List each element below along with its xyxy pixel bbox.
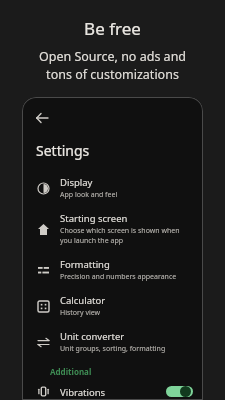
staticText: Vibrations xyxy=(60,386,106,397)
button[interactable]: Back xyxy=(29,105,55,131)
button[interactable]: Calculator xyxy=(22,291,203,321)
staticText: Choose which screen is shown when you la… xyxy=(60,226,191,246)
staticText: Starting screen xyxy=(60,212,128,225)
staticText: Additional xyxy=(50,366,92,377)
staticText: Unit groups, sorting, formatting xyxy=(60,344,166,354)
button[interactable]: Starting screen xyxy=(22,209,203,249)
staticText: Settings xyxy=(36,141,90,160)
staticText: Formatting xyxy=(60,258,110,271)
staticText: Open Source, no ads and tons of customiz… xyxy=(8,48,217,83)
button[interactable]: Display xyxy=(22,173,203,203)
button[interactable]: Vibrations xyxy=(22,383,203,400)
button[interactable]: Formatting xyxy=(22,255,203,285)
staticText: Precision and numbers appearance xyxy=(60,272,177,282)
staticText: Be free xyxy=(0,17,225,40)
button[interactable]: Unit converter xyxy=(22,327,203,357)
button[interactable]: Vibrations toggle xyxy=(166,386,193,397)
staticText: History view xyxy=(60,308,101,318)
staticText: Unit converter xyxy=(60,330,125,343)
staticText: Calculator xyxy=(60,294,106,307)
staticText: App look and feel xyxy=(60,190,118,200)
staticText: Display xyxy=(60,176,93,189)
